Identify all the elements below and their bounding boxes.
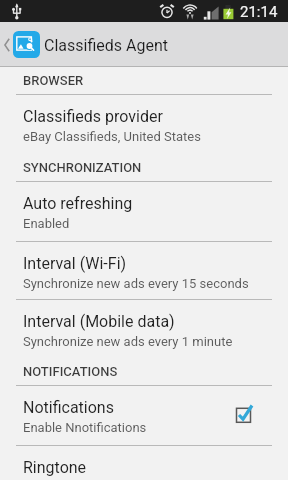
staticText: Enable Nnotifications (23, 420, 147, 435)
staticText: eBay Classifieds, United States (23, 129, 201, 144)
button[interactable]: Interval (Wi-Fi) (0, 242, 288, 301)
staticText: BROWSER (23, 73, 84, 88)
button[interactable]: Interval (Mobile data) (0, 300, 288, 359)
staticText: NOTIFICATIONS (23, 364, 118, 379)
button[interactable]: Ringtone (0, 446, 288, 480)
staticText: SYNCHRONIZATION (23, 160, 142, 175)
staticText: Classifieds provider (23, 107, 163, 126)
button[interactable]: Classifieds provider (0, 95, 288, 154)
button[interactable]: Navigate up (0, 22, 288, 66)
staticText: 21:14 (240, 3, 278, 21)
staticText: Classifieds Agent (44, 36, 168, 55)
staticText: Synchronize new ads every 15 seconds (23, 276, 249, 291)
button[interactable]: Notifications (0, 386, 288, 445)
staticText: Auto refreshing (23, 194, 133, 213)
staticText: Interval (Wi-Fi) (23, 254, 127, 273)
staticText: Enabled (23, 216, 70, 231)
staticText: Ringtone (23, 458, 87, 477)
staticText: Notifications (23, 398, 114, 417)
button[interactable]: Auto refreshing (0, 182, 288, 241)
staticText: Interval (Mobile data) (23, 312, 175, 331)
staticText: Synchronize new ads every 1 minute (23, 334, 233, 349)
